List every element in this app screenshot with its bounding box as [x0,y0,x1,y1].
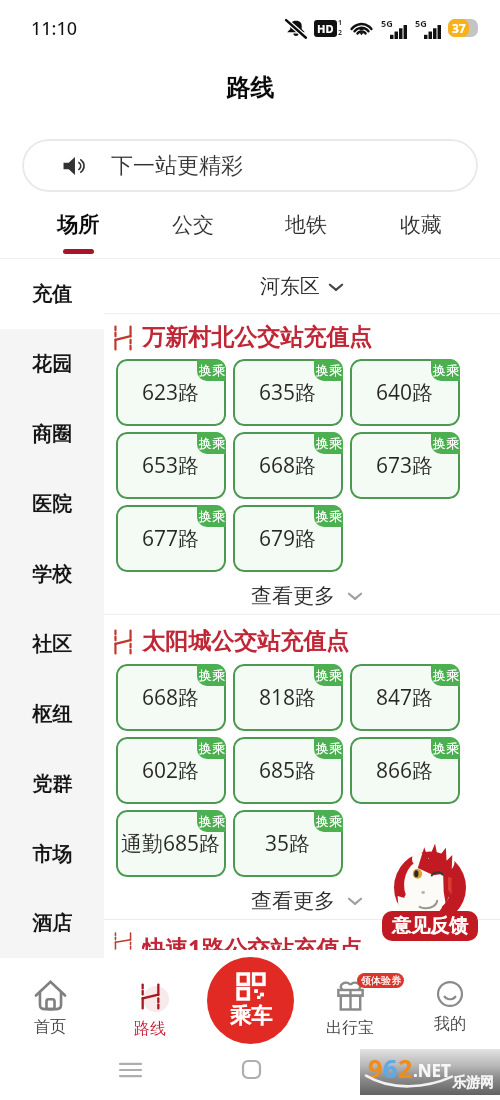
button[interactable]: 635路 [233,359,343,426]
other: Recents [120,1062,141,1078]
staticText: 万新村北公交站充值点 [142,323,372,352]
button[interactable]: 818路 [233,664,343,731]
staticText: 河东区 [260,274,320,299]
button[interactable]: 653路 [116,432,226,499]
staticText: HD [317,21,334,36]
button[interactable]: 商圈 [0,399,104,469]
staticText: 866路 [376,756,434,785]
button[interactable]: 社区 [0,609,104,679]
staticText: 换乘 [199,362,225,378]
staticText: 668路 [259,451,317,480]
staticText: 37 [452,20,466,36]
staticText: 路线 [134,1019,166,1039]
staticText: 2 [338,28,343,38]
staticText: 685路 [259,756,317,785]
button[interactable]: 市场 [0,819,104,889]
staticText: 换乘 [199,508,225,524]
staticText: 换乘 [316,508,342,524]
staticText: 623路 [142,378,200,407]
staticText: 地铁 [285,212,327,238]
staticText: 医院 [32,492,72,517]
button[interactable]: 673路 [350,432,460,499]
staticText: 6 [383,1051,398,1085]
button[interactable]: 酒店 [0,889,104,958]
staticText: 我的 [434,1014,466,1034]
button[interactable]: 收藏 [388,200,454,259]
staticText: 2 [398,1051,413,1085]
staticText: 换乘 [433,435,459,451]
button[interactable]: 我的 [400,958,500,1045]
staticText: 商圈 [32,422,72,447]
button[interactable]: 35路 [233,810,343,877]
button[interactable]: 下一站更精彩 [22,139,478,192]
staticText: 换乘 [316,667,342,683]
button[interactable]: 花园 [0,329,104,399]
staticText: 换乘 [316,813,342,829]
staticText: 换乘 [199,435,225,451]
staticText: 下一站更精彩 [111,152,243,180]
button[interactable]: 首页 [0,958,100,1045]
staticText: 市场 [32,842,72,867]
staticText: 5G [415,17,427,29]
button[interactable]: 学校 [0,539,104,609]
staticText: 场所 [57,212,99,238]
staticText: 学校 [32,562,72,587]
staticText: 花园 [32,352,72,377]
staticText: 11:10 [31,16,78,41]
staticText: 换乘 [199,813,225,829]
staticText: 社区 [32,632,72,657]
button[interactable]: 通勤685路 [116,810,226,877]
button[interactable]: 查看更多 [251,583,363,609]
button[interactable]: 602路 [116,737,226,804]
button[interactable]: 668路 [116,664,226,731]
button[interactable]: 意见反馈 [382,836,478,941]
button[interactable]: 公交 [160,200,226,259]
button[interactable]: 847路 [350,664,460,731]
button[interactable]: 668路 [233,432,343,499]
staticText: 公交 [172,212,214,238]
button[interactable]: 医院 [0,469,104,539]
button[interactable]: 866路 [350,737,460,804]
staticText: 充值 [32,282,72,307]
button[interactable]: 685路 [233,737,343,804]
staticText: 通勤685路 [121,829,221,858]
staticText: 换乘 [433,362,459,378]
staticText: 收藏 [400,212,442,238]
staticText: 枢纽 [32,702,72,727]
other: Home [243,1061,260,1078]
button[interactable]: 640路 [350,359,460,426]
button[interactable]: 677路 [116,505,226,572]
staticText: 快速1路公交站充值点 [142,932,363,950]
staticText: 1 [338,18,343,28]
staticText: 查看更多 [251,888,335,914]
staticText: 653路 [142,451,200,480]
staticText: 换乘 [316,435,342,451]
button[interactable]: 枢纽 [0,679,104,749]
button[interactable]: 场所 [45,200,111,259]
staticText: 出行宝 [326,1018,374,1038]
button[interactable]: 充值 [0,259,104,329]
staticText: 673路 [376,451,434,480]
staticText: 换乘 [433,740,459,756]
staticText: 意见反馈 [392,914,468,938]
button[interactable]: 623路 [116,359,226,426]
button[interactable]: 679路 [233,505,343,572]
staticText: 9 [368,1051,383,1085]
button[interactable]: 出行宝 [300,958,400,1045]
staticText: 党群 [32,772,72,797]
button[interactable]: 查看更多 [251,888,363,914]
staticText: 换乘 [433,667,459,683]
button[interactable]: 党群 [0,749,104,819]
staticText: 640路 [376,378,434,407]
staticText: 太阳城公交站充值点 [142,627,349,656]
button[interactable]: 地铁 [273,200,339,259]
staticText: 677路 [142,524,200,553]
button[interactable]: 乘车 扫码乘车 [207,957,294,1044]
staticText: 换乘 [316,362,342,378]
staticText: .NET [413,1059,451,1082]
button[interactable]: 河东区 [260,274,344,299]
button[interactable]: 路线 [100,958,200,1045]
staticText: 668路 [142,683,200,712]
staticText: 679路 [259,524,317,553]
staticText: 602路 [142,756,200,785]
